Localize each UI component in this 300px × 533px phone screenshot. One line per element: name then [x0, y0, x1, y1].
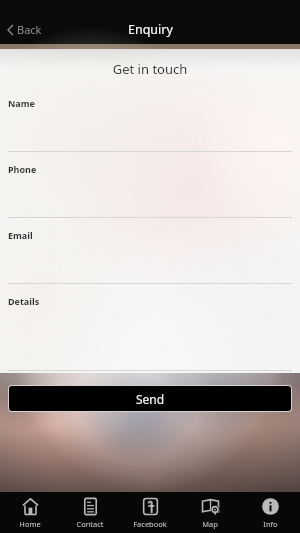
staticText: Send — [136, 391, 165, 407]
staticText: Home — [19, 519, 41, 529]
button[interactable]: Send — [9, 386, 291, 411]
button[interactable]: Name — [0, 86, 300, 152]
other: Facebook — [141, 497, 160, 516]
other: Contact — [81, 497, 100, 516]
other: Back — [8, 25, 13, 35]
staticText: Phone — [8, 163, 37, 175]
button[interactable]: Back — [0, 18, 52, 41]
button[interactable]: Phone — [0, 152, 300, 218]
button[interactable]: Info — [240, 492, 300, 533]
staticText: Map — [202, 519, 218, 529]
staticText: Info — [263, 519, 278, 529]
other: Info — [261, 497, 280, 516]
staticText: Enquiry — [128, 21, 173, 38]
button[interactable]: Home — [0, 492, 60, 533]
staticText: Email — [8, 229, 33, 241]
button[interactable]: Map — [180, 492, 240, 533]
staticText: Details — [8, 295, 40, 307]
staticText: Facebook — [133, 519, 167, 529]
other: Map — [201, 497, 220, 516]
staticText: Get in touch — [0, 60, 300, 78]
button[interactable]: Facebook — [120, 492, 180, 533]
staticText: Contact — [76, 519, 104, 529]
other: Home — [21, 497, 40, 516]
button[interactable]: Details — [0, 284, 300, 371]
staticText: Back — [17, 22, 42, 37]
staticText: Name — [8, 97, 35, 109]
button[interactable]: Contact — [60, 492, 120, 533]
button[interactable]: Email — [0, 218, 300, 284]
